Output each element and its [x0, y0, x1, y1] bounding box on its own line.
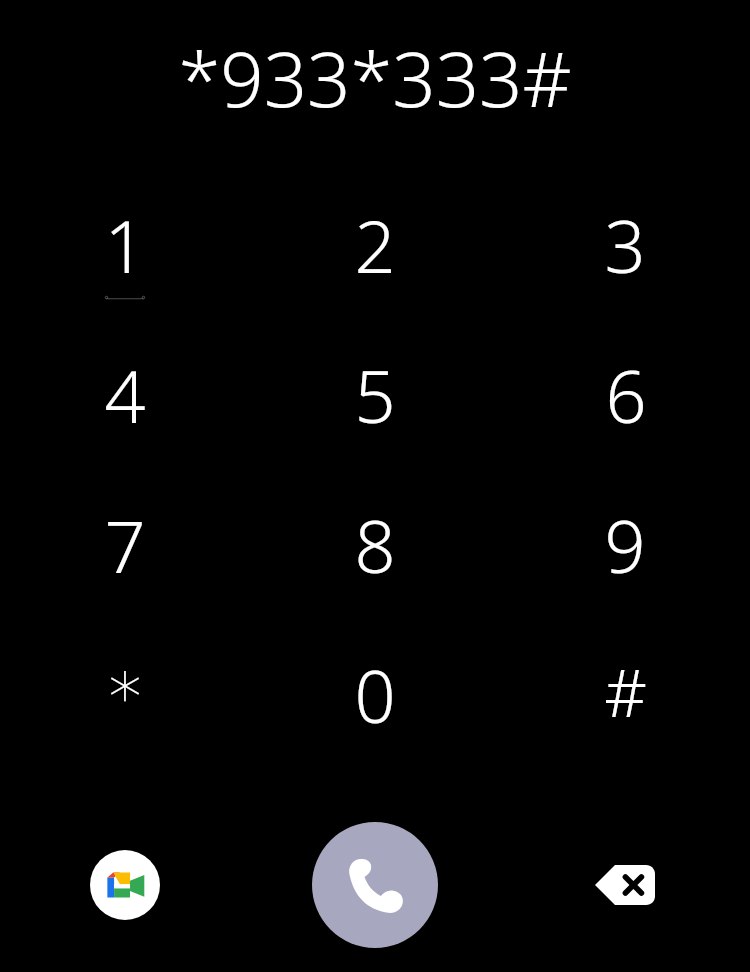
button[interactable]: #	[500, 646, 750, 749]
button[interactable]: 1	[0, 196, 250, 299]
button[interactable]: 0	[250, 646, 500, 749]
staticText: *933*333#	[178, 26, 572, 130]
staticText: 9	[604, 496, 646, 594]
button[interactable]: *933*333#	[0, 26, 750, 130]
staticText: 2	[354, 196, 396, 294]
staticText: 8	[354, 496, 396, 594]
staticText: 7	[104, 496, 146, 594]
button[interactable]: 6	[500, 346, 750, 449]
button[interactable]: 8	[250, 496, 500, 599]
button[interactable]: 9	[500, 496, 750, 599]
button[interactable]: 5	[250, 346, 500, 449]
staticText: 3	[604, 196, 646, 294]
staticText: 6	[605, 346, 647, 444]
button[interactable]: 7	[0, 496, 250, 599]
staticText: ∗	[104, 646, 146, 723]
button[interactable]: Call	[250, 822, 500, 948]
button[interactable]: ∗	[0, 646, 250, 749]
staticText: 4	[104, 346, 146, 444]
button[interactable]: Backspace	[500, 822, 750, 948]
staticText: 5	[354, 346, 396, 444]
staticText: 0	[354, 646, 396, 744]
button[interactable]: Video call with Google Meet	[0, 822, 250, 948]
button[interactable]: 4	[0, 346, 250, 449]
staticText: #	[604, 646, 647, 736]
staticText: 1	[104, 196, 146, 294]
button[interactable]: 2	[250, 196, 500, 299]
button[interactable]: 3	[500, 196, 750, 299]
